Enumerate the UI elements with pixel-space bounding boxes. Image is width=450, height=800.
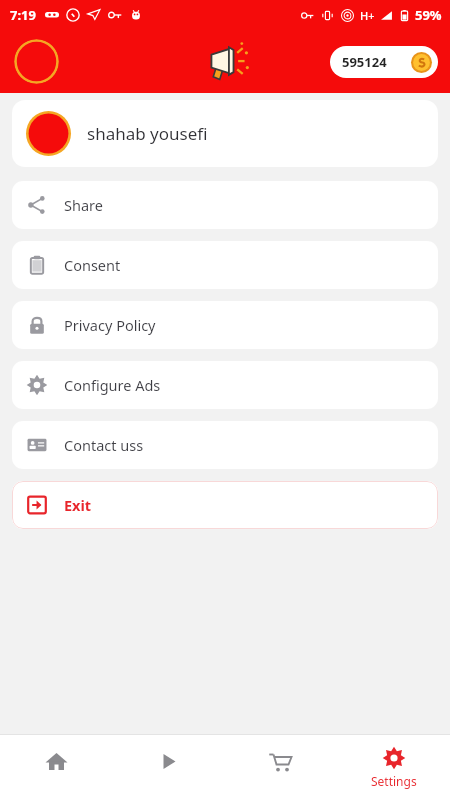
button[interactable]: Privacy Policy bbox=[12, 301, 438, 349]
button[interactable]: shahab yousefi bbox=[12, 100, 438, 167]
staticText: Contact uss bbox=[64, 435, 144, 455]
button[interactable]: Settings bbox=[337, 735, 450, 800]
button[interactable]: 595124 bbox=[330, 46, 438, 78]
button[interactable]: Home bbox=[0, 735, 112, 800]
staticText: 595124 bbox=[342, 53, 387, 71]
staticText: Privacy Policy bbox=[64, 315, 156, 335]
button[interactable]: Configure Ads bbox=[12, 361, 438, 409]
staticText: Configure Ads bbox=[64, 375, 161, 395]
staticText: 7:19 bbox=[10, 6, 36, 24]
staticText: Consent bbox=[64, 255, 121, 275]
staticText: Settings bbox=[371, 773, 417, 789]
button[interactable]: Profile bbox=[14, 39, 59, 84]
staticText: Exit bbox=[64, 495, 92, 515]
button[interactable]: Play bbox=[112, 735, 224, 800]
staticText: shahab yousefi bbox=[87, 122, 208, 145]
staticText: H+ bbox=[360, 8, 375, 23]
button[interactable]: Exit bbox=[12, 481, 438, 529]
button[interactable]: Share bbox=[12, 181, 438, 229]
button[interactable]: Cart bbox=[224, 735, 337, 800]
staticText: Share bbox=[64, 195, 103, 215]
button[interactable]: Contact uss bbox=[12, 421, 438, 469]
button[interactable]: Consent bbox=[12, 241, 438, 289]
staticText: 59% bbox=[415, 6, 442, 24]
button[interactable]: Announcements bbox=[205, 39, 251, 85]
